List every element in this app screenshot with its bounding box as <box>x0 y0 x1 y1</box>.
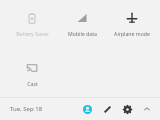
button[interactable]: Settings <box>119 101 135 117</box>
button[interactable]: Cast <box>7 58 57 87</box>
button[interactable]: Collapse <box>139 101 155 117</box>
staticText: Mobile data <box>68 30 97 37</box>
button[interactable]: Mobile data <box>57 8 107 37</box>
staticText: Battery Saver <box>16 30 49 37</box>
staticText: Airplane mode <box>114 30 150 37</box>
button[interactable]: Battery Saver <box>7 8 57 37</box>
button[interactable]: Tue, Sep 18 <box>8 103 45 115</box>
button[interactable]: User <box>79 101 95 117</box>
button[interactable]: Airplane mode <box>107 8 157 37</box>
staticText: Cast <box>27 80 38 87</box>
button[interactable]: Edit <box>99 101 115 117</box>
staticText: Tue, Sep 18 <box>10 105 43 113</box>
